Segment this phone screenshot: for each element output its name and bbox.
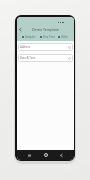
staticText: Demo Template — [32, 27, 59, 32]
staticText: Address — [20, 45, 31, 49]
button[interactable] — [60, 154, 63, 157]
button[interactable]: Samples — [22, 35, 36, 39]
button[interactable]: Date & Time — [18, 54, 73, 62]
staticText: Free Time — [43, 35, 55, 39]
button[interactable] — [28, 154, 31, 157]
staticText: Other — [61, 35, 69, 39]
button[interactable]: Free Time — [40, 35, 55, 39]
button[interactable] — [44, 153, 48, 157]
button[interactable]: Other — [58, 35, 69, 39]
button[interactable]: Address — [18, 43, 73, 51]
button[interactable] — [19, 28, 22, 31]
staticText: Samples — [25, 35, 36, 39]
staticText: Date & Time — [20, 56, 36, 60]
